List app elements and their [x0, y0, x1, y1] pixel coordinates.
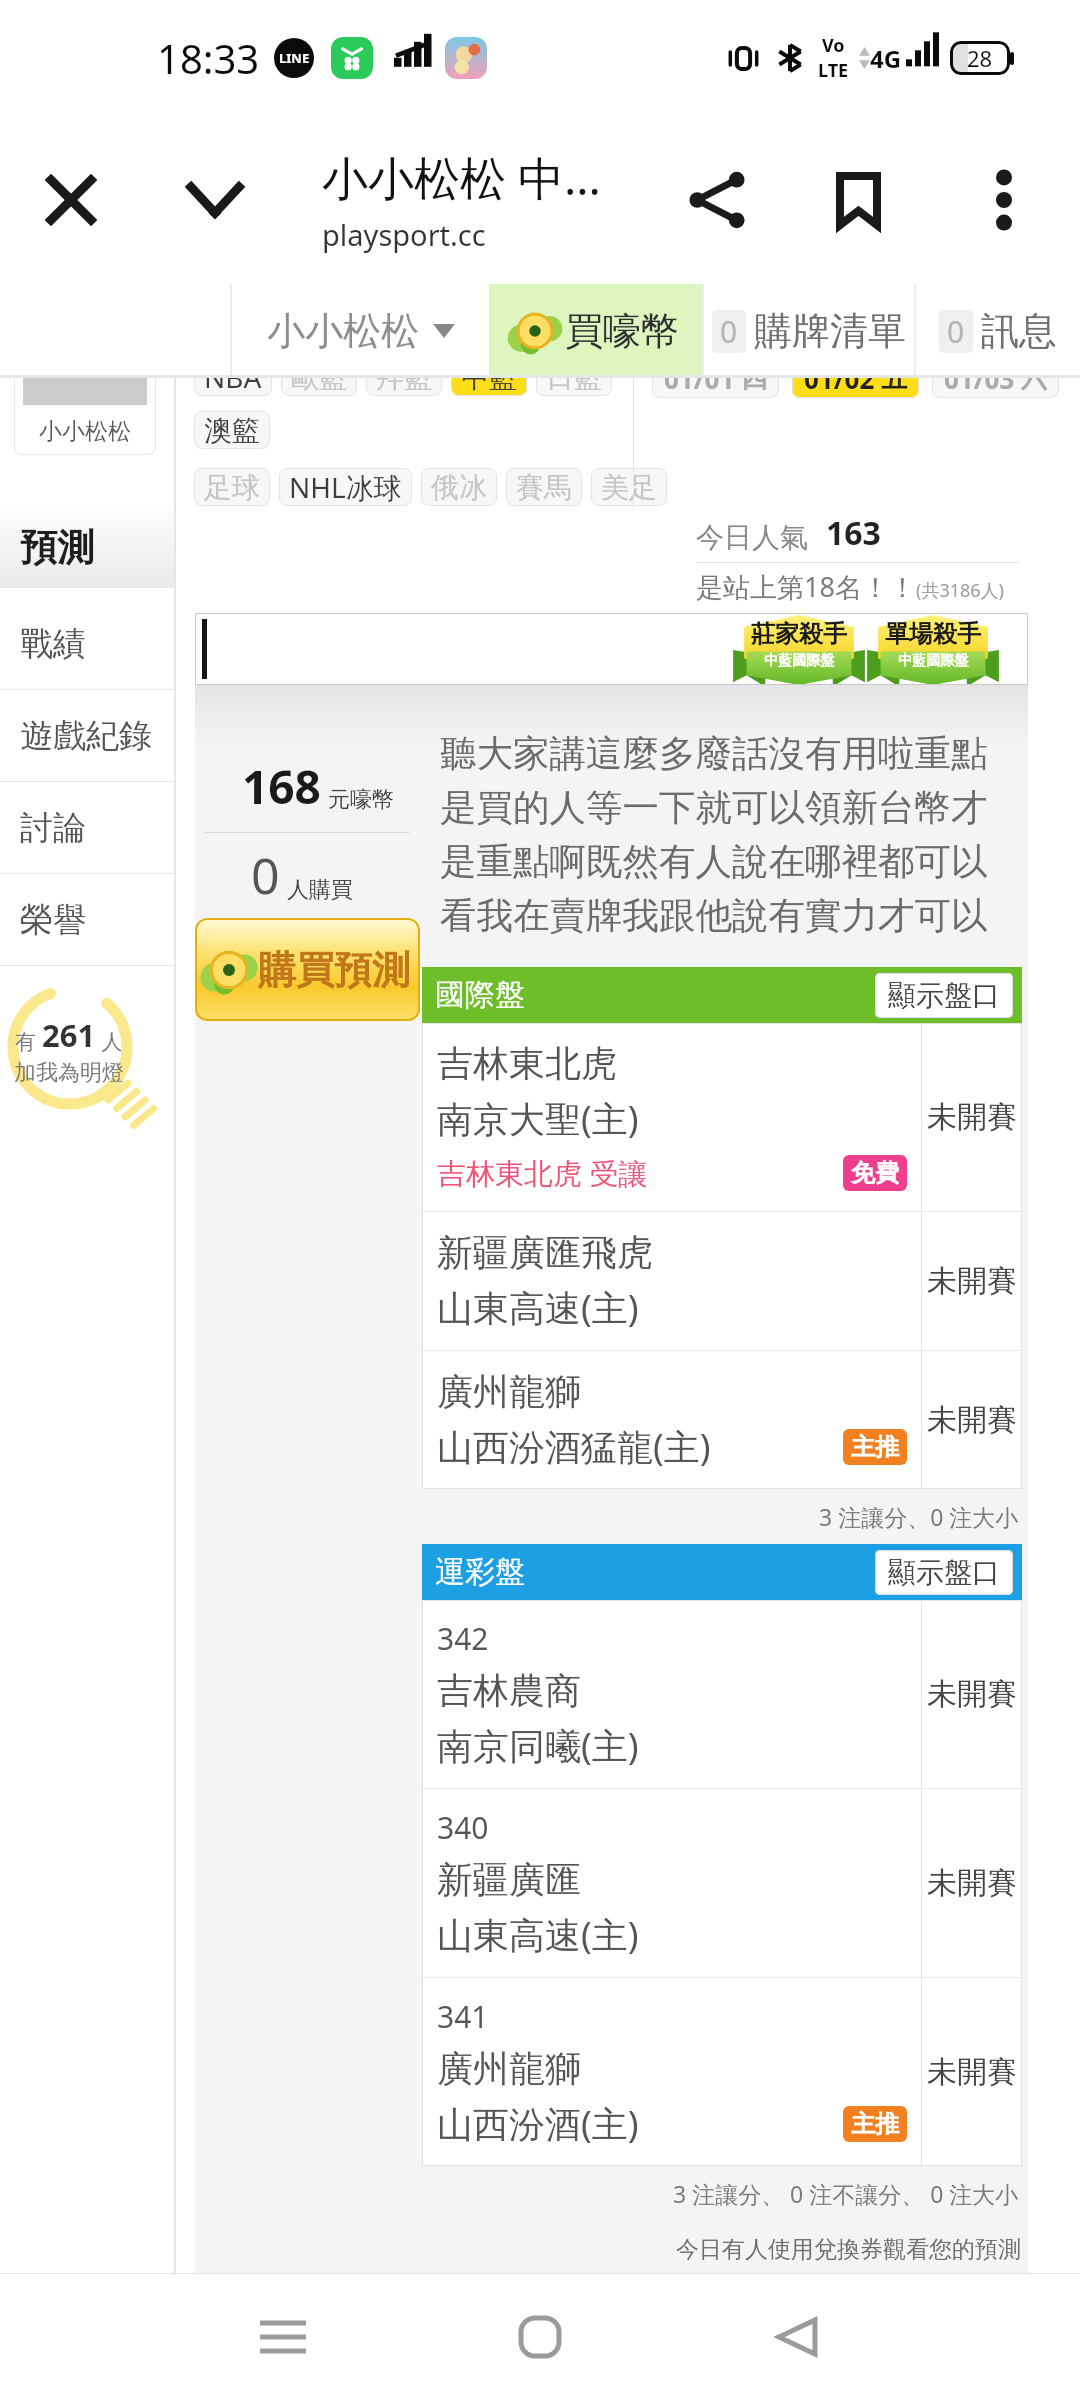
staticText: 免費 — [851, 1158, 899, 1188]
staticText: 未開賽 — [927, 1401, 1017, 1439]
staticText: 今日有人使用兌換券觀看您的預測 — [676, 2235, 1021, 2264]
staticText: 吉林農商 — [437, 1668, 581, 1713]
staticText: 拜籃 — [376, 360, 432, 395]
button[interactable]: 歐籃 — [281, 358, 357, 396]
button[interactable]: 討論 — [0, 782, 174, 874]
staticText: 中藍國際盤 — [898, 652, 968, 670]
staticText: 主推 — [851, 2109, 899, 2139]
staticText: 341 — [437, 1996, 489, 2037]
button[interactable]: 01/03 — [932, 358, 1059, 398]
button[interactable]: NBA — [194, 358, 272, 396]
staticText: 小小松松 中... — [322, 146, 601, 209]
staticText: 168 — [242, 755, 321, 818]
staticText: 261 — [42, 1014, 96, 1056]
staticText: 榮譽 — [20, 899, 86, 941]
staticText: 01/02 — [804, 361, 875, 396]
staticText: 新疆廣匯 — [437, 1857, 581, 1902]
button[interactable]: 01/01 — [652, 358, 779, 398]
staticText: 163 — [826, 511, 881, 555]
staticText: 聽大家講這麼多廢話沒有用啦重點 — [440, 731, 988, 777]
staticText: LINE — [279, 49, 310, 67]
staticText: 中藍國際盤 — [764, 652, 834, 670]
staticText: 吉林東北虎 — [437, 1041, 617, 1086]
button[interactable]: Close — [0, 116, 142, 284]
staticText: 南京同曦(主) — [437, 1721, 639, 1770]
button[interactable]: 俄冰 — [421, 468, 497, 506]
staticText: 五 — [881, 362, 907, 395]
staticText: NHL冰球 — [289, 468, 402, 506]
staticText: 340 — [437, 1807, 489, 1848]
button[interactable]: 購買預測 — [195, 918, 420, 1021]
button[interactable]: 足球 — [194, 468, 270, 506]
staticText: 未開賽 — [927, 2053, 1017, 2091]
staticText: 歐籃 — [291, 360, 347, 395]
staticText: 日籃 — [546, 360, 602, 395]
staticText: 是站上第18名！！ — [696, 568, 916, 605]
staticText: 元嚎幣 — [328, 786, 394, 814]
staticText: 六 — [1021, 362, 1047, 395]
staticText: 0 — [720, 311, 738, 352]
staticText: 人 — [96, 1027, 123, 1056]
button[interactable]: Recent apps — [228, 2282, 338, 2392]
button[interactable]: 賽馬 — [506, 468, 582, 506]
button[interactable]: 日籃 — [536, 358, 612, 396]
button[interactable]: 顯示盤口 — [875, 1550, 1013, 1595]
staticText: 是買的人等一下就可以領新台幣才 — [440, 785, 988, 831]
staticText: 18:33 — [157, 31, 260, 85]
staticText: 廣州龍獅 — [437, 1369, 581, 1414]
staticText: 購買預測 — [258, 946, 410, 994]
staticText: 山東高速(主) — [437, 1283, 639, 1332]
button[interactable]: 01/02 — [792, 358, 919, 398]
button[interactable]: 預測 — [0, 506, 174, 588]
staticText: 訊息 — [981, 307, 1057, 355]
staticText: 足球 — [204, 470, 260, 505]
button[interactable]: 中籃 — [451, 358, 527, 396]
staticText: 人購買 — [287, 876, 353, 904]
staticText: 購牌清單 — [754, 307, 906, 355]
staticText: Vo — [822, 33, 845, 58]
button[interactable]: More options — [927, 116, 1080, 284]
button[interactable]: 戰績 — [0, 598, 174, 690]
staticText: 顯示盤口 — [888, 978, 1000, 1013]
button[interactable]: Collapse — [142, 116, 288, 284]
staticText: 是重點啊既然有人說在哪裡都可以 — [440, 839, 988, 885]
staticText: 賽馬 — [516, 470, 572, 505]
staticText: 廣州龍獅 — [437, 2046, 581, 2091]
staticText: 山西汾酒猛龍(主) — [437, 1422, 711, 1471]
button[interactable]: 顯示盤口 — [875, 973, 1013, 1018]
button[interactable]: 澳籃 — [194, 411, 270, 449]
button[interactable]: Home — [485, 2282, 595, 2392]
button[interactable]: 0 — [704, 284, 914, 378]
staticText: 未開賽 — [927, 1675, 1017, 1713]
staticText: 小小松松 — [267, 307, 419, 355]
staticText: LTE — [818, 58, 849, 83]
staticText: 有 — [15, 1027, 42, 1056]
button[interactable]: 0 — [916, 284, 1080, 378]
button[interactable]: 小小松松 — [232, 284, 489, 378]
button[interactable]: Bookmark — [790, 116, 927, 284]
button[interactable]: Back — [742, 2282, 852, 2392]
staticText: 山西汾酒(主) — [437, 2099, 639, 2148]
staticText: 新疆廣匯飛虎 — [437, 1230, 653, 1275]
button[interactable]: Share — [644, 116, 790, 284]
staticText: 山東高速(主) — [437, 1910, 639, 1959]
staticText: 3 注讓分、0 注大小 — [819, 1501, 1019, 1532]
staticText: 四 — [741, 362, 767, 395]
button[interactable]: 拜籃 — [366, 358, 442, 396]
staticText: 看我在賣牌我跟他說有實力才可以 — [440, 893, 988, 939]
staticText: 小小松松 — [39, 417, 131, 446]
staticText: 國際盤 — [435, 976, 525, 1014]
button[interactable]: 遊戲紀錄 — [0, 690, 174, 782]
button[interactable]: 買嚎幣 — [489, 284, 702, 378]
button[interactable]: 美足 — [591, 468, 667, 506]
staticText: playsport.cc — [322, 215, 486, 254]
button[interactable]: 榮譽 — [0, 874, 174, 966]
staticText: 戰績 — [20, 623, 86, 665]
staticText: 主推 — [851, 1432, 899, 1462]
button[interactable]: NHL冰球 — [279, 468, 412, 506]
staticText: (共3186人) — [916, 578, 1004, 603]
staticText: 4G — [870, 42, 902, 75]
staticText: 今日人氣 — [696, 520, 808, 555]
staticText: 0 — [947, 311, 965, 352]
staticText: 運彩盤 — [435, 1553, 525, 1591]
